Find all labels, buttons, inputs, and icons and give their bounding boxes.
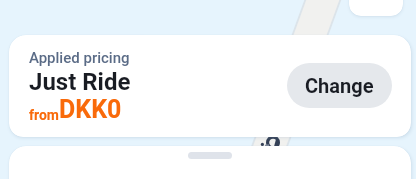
button[interactable] <box>9 146 411 179</box>
button[interactable]: Change <box>287 63 392 108</box>
button[interactable]: Recenter map <box>349 0 403 16</box>
staticText: DKK0 <box>59 95 122 124</box>
staticText: Change <box>305 74 374 97</box>
staticText: from <box>29 107 59 123</box>
button[interactable]: Applied pricing <box>9 35 411 137</box>
staticText: Just Ride <box>29 68 131 96</box>
staticText: Applied pricing <box>29 49 130 67</box>
